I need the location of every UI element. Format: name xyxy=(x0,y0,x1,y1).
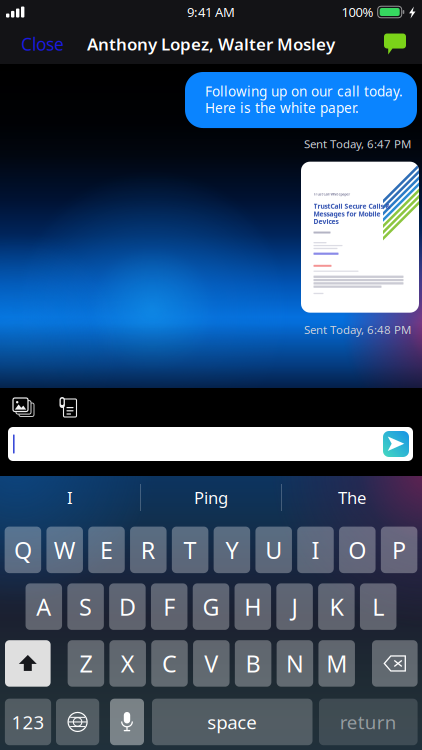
button[interactable]: Close xyxy=(0,24,76,64)
staticText: A xyxy=(36,591,51,623)
button[interactable]: Shift xyxy=(5,640,51,687)
staticText: D xyxy=(119,591,136,623)
button[interactable]: Ping xyxy=(141,475,281,519)
button[interactable]: A xyxy=(26,583,62,630)
staticText: Anthony Lopez, Walter Mosley xyxy=(87,32,335,56)
button[interactable]: Delete xyxy=(372,640,418,687)
staticText: U xyxy=(265,534,282,566)
button[interactable]: U xyxy=(255,527,292,573)
button[interactable]: D xyxy=(109,583,146,630)
staticText: 9:41 AM xyxy=(187,3,235,21)
button[interactable]: Y xyxy=(214,527,250,573)
staticText: 100% xyxy=(341,3,373,21)
button[interactable]: E xyxy=(88,527,125,573)
staticText: K xyxy=(329,591,343,623)
staticText: space xyxy=(207,709,257,735)
staticText: Sent Today, 6:48 PM xyxy=(304,322,411,337)
staticText: Sent Today, 6:47 PM xyxy=(304,136,411,152)
staticText: C xyxy=(162,648,177,679)
staticText: M xyxy=(326,648,347,679)
button[interactable]: 123 xyxy=(5,699,51,745)
staticText: S xyxy=(79,591,92,623)
staticText: Following up on our call today. xyxy=(205,82,403,100)
staticText: O xyxy=(348,534,366,566)
button[interactable]: B xyxy=(235,640,271,687)
staticText: Ping xyxy=(194,486,228,509)
button[interactable]: K xyxy=(318,583,355,630)
staticText: Close xyxy=(21,32,64,56)
staticText: E xyxy=(100,534,113,566)
button[interactable]: X xyxy=(109,640,146,687)
button[interactable]: V xyxy=(193,640,230,687)
button[interactable]: Attach document xyxy=(46,388,90,426)
staticText: Here is the white paper. xyxy=(205,98,359,117)
button[interactable]: Next keyboard xyxy=(56,699,99,745)
staticText: Y xyxy=(225,534,238,566)
staticText: G xyxy=(202,591,219,623)
staticText: F xyxy=(163,591,175,623)
staticText: TrustCall Whitepaper xyxy=(313,192,350,197)
button[interactable]: N xyxy=(277,640,313,687)
button[interactable]: Send xyxy=(383,431,409,457)
button[interactable]: J xyxy=(276,583,313,630)
staticText: Q xyxy=(14,534,32,566)
button[interactable]: W xyxy=(46,527,83,573)
button[interactable]: M xyxy=(318,640,355,687)
staticText: I xyxy=(67,486,73,509)
staticText: J xyxy=(292,591,298,623)
staticText: R xyxy=(141,534,156,566)
staticText: 123 xyxy=(11,709,44,735)
staticText: Devices xyxy=(313,217,338,226)
button[interactable]: R xyxy=(130,527,167,573)
staticText: H xyxy=(244,591,261,623)
staticText: Z xyxy=(79,648,92,679)
button[interactable]: G xyxy=(193,583,229,630)
staticText: TrustCall Secure Calls & xyxy=(313,202,390,211)
button[interactable]: Z xyxy=(68,640,104,687)
staticText: return xyxy=(340,709,397,735)
button[interactable]: Photos xyxy=(2,388,46,426)
staticText: L xyxy=(372,591,384,623)
staticText: W xyxy=(54,534,76,566)
staticText: X xyxy=(121,648,135,679)
button[interactable]: L xyxy=(360,583,396,630)
button[interactable]: New message xyxy=(368,24,422,64)
staticText: N xyxy=(286,648,304,679)
staticText: Messages for Mobile xyxy=(313,209,380,218)
staticText: T xyxy=(184,534,197,566)
staticText: The xyxy=(338,486,366,509)
button[interactable]: space xyxy=(152,699,312,745)
button[interactable]: F xyxy=(151,583,187,630)
button[interactable]: P xyxy=(381,527,417,573)
button[interactable]: H xyxy=(235,583,271,630)
button[interactable]: I xyxy=(0,475,140,519)
button[interactable]: return xyxy=(319,699,418,745)
button[interactable]: T xyxy=(172,527,208,573)
staticText: B xyxy=(246,648,261,679)
button[interactable]: I xyxy=(297,527,334,573)
button[interactable]: O xyxy=(339,527,376,573)
staticText: P xyxy=(392,534,406,566)
button[interactable]: C xyxy=(151,640,188,687)
button[interactable]: The xyxy=(282,475,422,519)
button[interactable]: Dictate xyxy=(110,699,144,745)
button[interactable]: Q xyxy=(5,527,41,573)
button[interactable]: S xyxy=(67,583,104,630)
staticText: V xyxy=(204,648,218,679)
staticText: I xyxy=(311,534,319,566)
